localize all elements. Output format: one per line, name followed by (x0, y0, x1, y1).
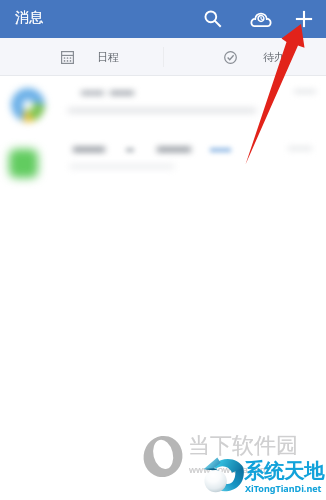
staticText: 当下软件园 (188, 432, 298, 460)
button[interactable]: 待办 (204, 38, 326, 76)
button[interactable]: Cloud backup (243, 0, 279, 38)
button[interactable] (0, 76, 326, 136)
staticText: www.downxia.com (189, 463, 269, 475)
button[interactable]: 日程 (40, 38, 162, 76)
staticText: 消息 (15, 9, 43, 27)
staticText: 日程 (97, 50, 119, 64)
button[interactable] (0, 136, 326, 196)
button[interactable]: Search (195, 0, 231, 38)
staticText: XiTongTianDi.net (245, 482, 322, 494)
staticText: 系统天地 (244, 459, 324, 484)
button[interactable]: Add (286, 0, 322, 38)
staticText: 待办 (263, 50, 285, 64)
